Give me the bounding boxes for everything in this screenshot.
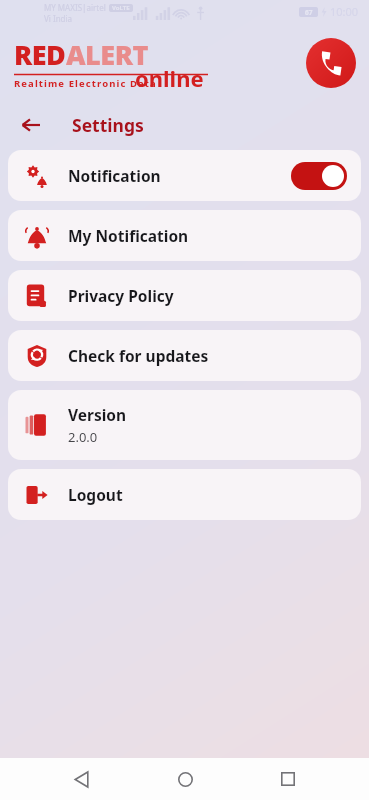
button[interactable]: Notification [8,150,361,201]
staticText: Realtime Electronic Data [14,77,157,90]
staticText: Notification [68,165,161,186]
staticText: 2.0.0 [68,428,98,446]
staticText: Vi India [44,13,73,24]
button[interactable]: My Notification [8,210,361,261]
staticText: online [135,63,204,93]
staticText: RED [14,36,66,73]
button[interactable]: Call [306,38,356,88]
staticText: 10:00 [330,4,359,19]
staticText: My Notification [68,225,189,246]
staticText: ALERT [66,36,148,73]
button[interactable]: Check for updates [8,330,361,381]
button[interactable]: Version [8,390,361,460]
staticText: Check for updates [68,345,209,366]
button[interactable]: Home [163,758,207,800]
staticText: Settings [72,113,144,137]
button[interactable]: Back [16,110,46,140]
staticText: Privacy Policy [68,285,174,306]
staticText: VoLTE [112,4,130,12]
staticText: MY MAXIS|airtel [44,2,106,13]
button[interactable]: Privacy Policy [8,270,361,321]
staticText: Version [68,404,127,425]
button[interactable]: Back [59,758,103,800]
button[interactable]: Logout [8,469,361,520]
staticText: Logout [68,484,123,505]
staticText: 67 [305,8,313,17]
button[interactable]: Recents [266,758,310,800]
button[interactable]: Notification toggle [291,162,347,190]
